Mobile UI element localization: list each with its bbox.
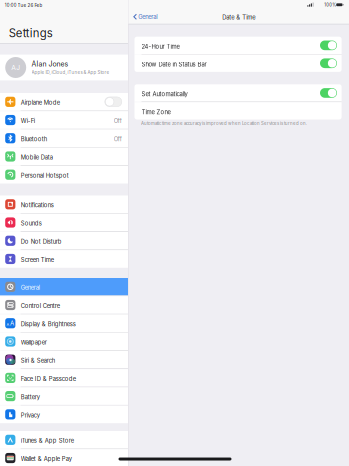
staticText: 10:00 [5, 3, 17, 8]
button[interactable]: Bluetooth [0, 129, 128, 147]
staticText: Screen Time [21, 256, 54, 263]
staticText: Off [114, 136, 122, 143]
staticText: 24-Hour Time [141, 43, 179, 50]
staticText: Alan Jones [31, 60, 68, 68]
staticText: Sounds [21, 220, 42, 227]
staticText: Off [114, 117, 122, 124]
button[interactable]: Wi-Fi [0, 111, 128, 129]
button[interactable]: Do Not Disturb [0, 232, 128, 249]
staticText: Wallet & Apple Pay [21, 455, 72, 462]
button[interactable]: Wallet & Apple Pay [0, 449, 128, 466]
staticText: Set Automatically [141, 91, 187, 98]
button[interactable]: Personal Hotspot [0, 166, 128, 183]
button[interactable]: Sounds [0, 214, 128, 231]
staticText: iTunes & App Store [21, 437, 74, 444]
staticText: Notifications [21, 202, 54, 209]
button[interactable]: General [132, 11, 158, 22]
staticText: Bluetooth [21, 136, 47, 143]
staticText: Privacy [21, 412, 40, 419]
staticText: Wallpaper [21, 339, 47, 346]
button[interactable]: Battery [0, 387, 128, 405]
button[interactable]: Notifications [0, 195, 128, 213]
button[interactable]: Show Date in Status Bar [134, 55, 342, 72]
staticText: Airplane Mode [21, 99, 60, 106]
button[interactable]: Airplane Mode [0, 93, 128, 111]
button[interactable]: 24-Hour Time [134, 37, 342, 54]
staticText: General [138, 13, 157, 20]
staticText: Mobile Data [21, 154, 53, 161]
button[interactable]: Siri & Search [0, 351, 128, 368]
staticText: Tue 26 Feb [18, 2, 43, 8]
button[interactable]: Wallpaper [0, 333, 128, 350]
staticText: General [21, 284, 40, 291]
button[interactable]: Privacy [0, 405, 128, 423]
staticText: Settings [9, 26, 53, 40]
staticText: Show Date in Status Bar [141, 61, 206, 68]
staticText: Display & Brightness [21, 321, 76, 328]
staticText: Apple ID, iCloud, iTunes & App Store [31, 70, 109, 75]
staticText: A [6, 322, 9, 327]
button[interactable]: Screen Time [0, 250, 128, 268]
button[interactable]: Control Centre [0, 296, 128, 314]
staticText: Do Not Disturb [21, 238, 62, 245]
staticText: AJ [11, 63, 20, 72]
button[interactable]: iTunes & App Store [0, 431, 128, 449]
staticText: Time Zone [141, 108, 170, 116]
button[interactable]: Set Automatically [134, 84, 342, 102]
button[interactable]: A [0, 314, 128, 332]
staticText: Personal Hotspot [21, 172, 69, 179]
button[interactable]: Face ID & Passcode [0, 369, 128, 387]
staticText: A [10, 319, 14, 327]
staticText: Wi-Fi [21, 117, 35, 124]
staticText: Face ID & Passcode [21, 375, 76, 382]
staticText: Automatic time zone accuracy is improved… [141, 121, 307, 126]
staticText: 100% [324, 2, 336, 7]
staticText: Siri & Search [21, 357, 55, 364]
button[interactable]: Mobile Data [0, 148, 128, 165]
staticText: Date & Time [222, 14, 255, 21]
button[interactable]: General [0, 278, 128, 296]
button[interactable]: AJ [0, 55, 128, 80]
staticText: Control Centre [21, 302, 60, 309]
staticText: Battery [21, 393, 40, 401]
button[interactable]: Time Zone [134, 102, 342, 119]
